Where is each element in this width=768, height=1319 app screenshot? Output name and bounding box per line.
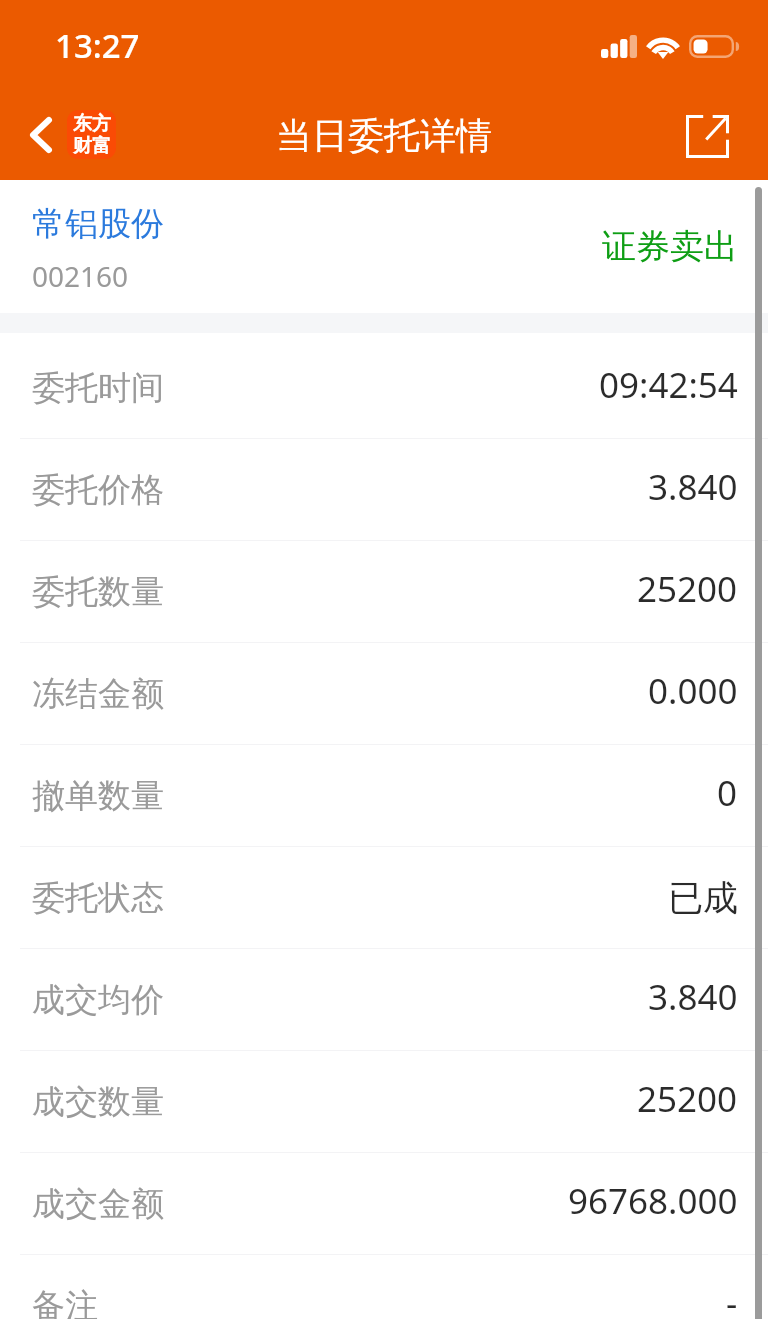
- staticText: 东方 财富: [73, 112, 111, 157]
- button[interactable]: 撤单数量: [0, 744, 768, 846]
- staticText: 0: [717, 769, 738, 817]
- staticText: 09:42:54: [599, 361, 738, 409]
- button[interactable]: 委托时间: [0, 337, 768, 438]
- staticText: 常铝股份: [32, 203, 164, 245]
- staticText: 3.840: [648, 973, 738, 1021]
- staticText: 3.840: [648, 463, 738, 511]
- staticText: 13:27: [55, 23, 140, 68]
- button[interactable]: 委托状态: [0, 846, 768, 948]
- staticText: 25200: [637, 565, 738, 613]
- staticText: 委托价格: [32, 469, 164, 511]
- staticText: 撤单数量: [32, 775, 164, 817]
- staticText: 成交金额: [32, 1183, 164, 1225]
- staticText: 0.000: [648, 667, 738, 715]
- staticText: 冻结金额: [32, 673, 164, 715]
- button[interactable]: Share: [672, 101, 742, 171]
- button[interactable]: 成交金额: [0, 1152, 768, 1254]
- button[interactable]: 成交均价: [0, 948, 768, 1050]
- staticText: 成交数量: [32, 1081, 164, 1123]
- staticText: 证券卖出: [602, 225, 738, 268]
- staticText: 002160: [32, 257, 129, 295]
- button[interactable]: 委托价格: [0, 438, 768, 540]
- staticText: 备注: [32, 1285, 98, 1319]
- button[interactable]: 委托数量: [0, 540, 768, 642]
- staticText: 委托状态: [32, 877, 164, 919]
- staticText: 委托数量: [32, 571, 164, 613]
- staticText: 当日委托详情: [276, 113, 492, 158]
- staticText: 96768.000: [568, 1177, 738, 1225]
- staticText: 成交均价: [32, 979, 164, 1021]
- button[interactable]: 成交数量: [0, 1050, 768, 1152]
- button[interactable]: 常铝股份: [0, 180, 768, 313]
- button[interactable]: Back: [0, 98, 126, 171]
- staticText: -: [726, 1279, 738, 1319]
- staticText: 25200: [637, 1075, 738, 1123]
- staticText: 委托时间: [32, 367, 164, 409]
- button[interactable]: 冻结金额: [0, 642, 768, 744]
- staticText: 已成: [668, 876, 738, 920]
- button[interactable]: 备注: [0, 1254, 768, 1319]
